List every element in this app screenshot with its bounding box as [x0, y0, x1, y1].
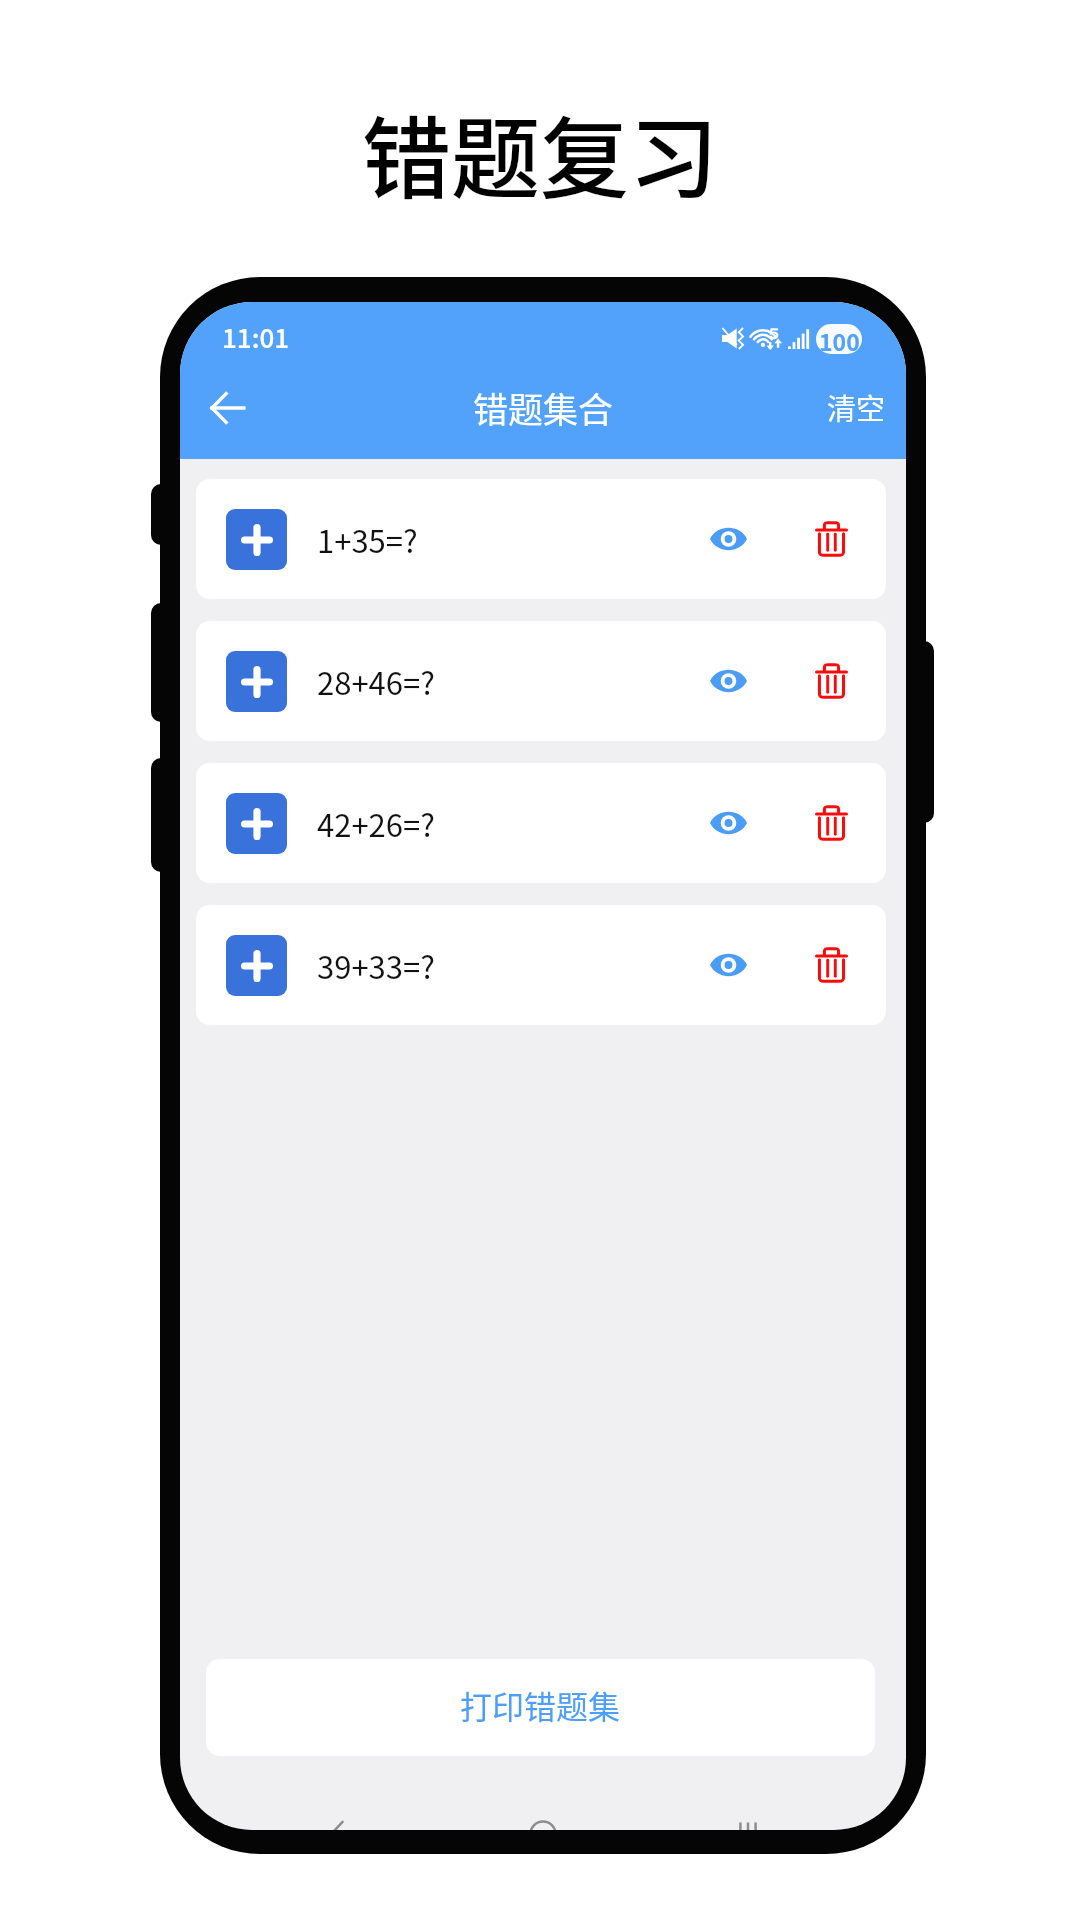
- button[interactable]: Delete: [799, 507, 863, 571]
- button[interactable]: 打印错题集: [206, 1659, 875, 1756]
- staticText: 清空: [827, 386, 886, 428]
- button[interactable]: Back: [191, 372, 263, 444]
- staticText: 28+46=?: [317, 659, 435, 704]
- staticText: 39+33=?: [317, 943, 435, 988]
- button[interactable]: 42+26=?: [196, 763, 886, 883]
- staticText: 100: [819, 324, 860, 354]
- staticText: 错题复习: [362, 88, 718, 206]
- staticText: 错题集合: [473, 382, 614, 433]
- button[interactable]: View: [696, 649, 760, 713]
- button[interactable]: Back: [319, 1815, 357, 1830]
- button[interactable]: 1+35=?: [196, 479, 886, 599]
- button[interactable]: 39+33=?: [196, 905, 886, 1025]
- staticText: 1+35=?: [317, 517, 418, 562]
- button[interactable]: View: [696, 791, 760, 855]
- staticText: 打印错题集: [460, 1682, 621, 1728]
- staticText: 42+26=?: [317, 801, 435, 846]
- button[interactable]: 28+46=?: [196, 621, 886, 741]
- button[interactable]: Home: [524, 1815, 562, 1830]
- button[interactable]: 清空: [801, 365, 906, 449]
- button[interactable]: Recents: [729, 1815, 767, 1830]
- button[interactable]: Delete: [799, 933, 863, 997]
- button[interactable]: View: [696, 507, 760, 571]
- button[interactable]: Delete: [799, 791, 863, 855]
- button[interactable]: View: [696, 933, 760, 997]
- button[interactable]: Delete: [799, 649, 863, 713]
- staticText: 11:01: [222, 318, 290, 356]
